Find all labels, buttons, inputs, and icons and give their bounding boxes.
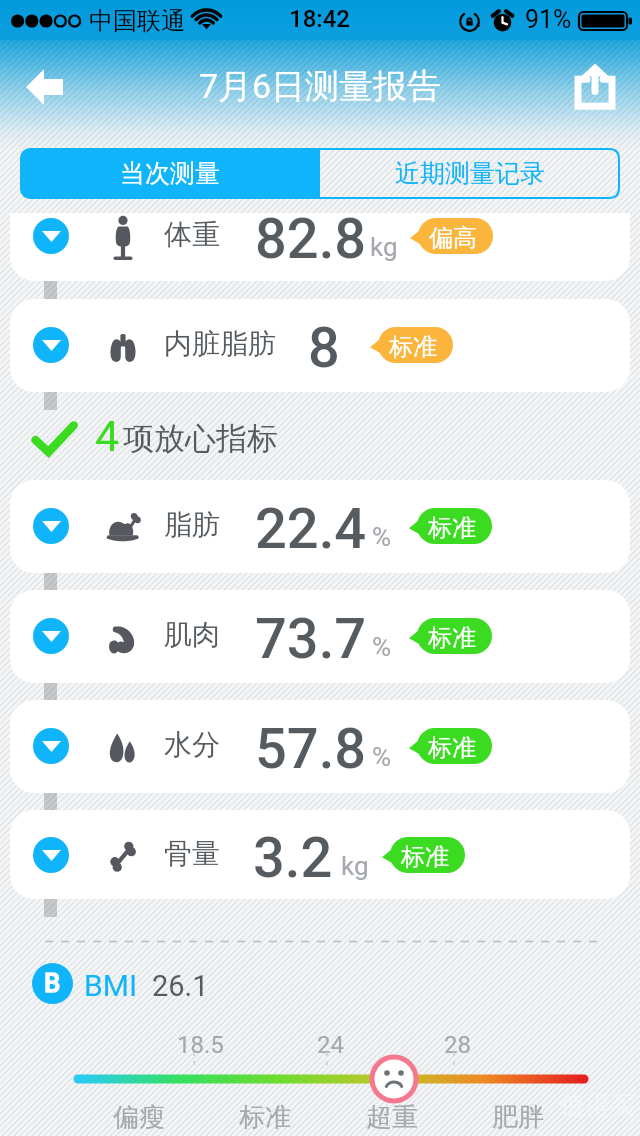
staticText: kg	[370, 232, 398, 262]
staticText: 标准	[401, 842, 449, 872]
staticText: 标准	[428, 513, 476, 543]
button[interactable]: 体重	[10, 213, 630, 281]
staticText: 8	[308, 315, 340, 381]
staticText: 28	[444, 1031, 471, 1059]
staticText: 标准	[428, 733, 476, 763]
staticText: 22.4	[255, 496, 367, 562]
staticText: %	[372, 632, 392, 662]
button[interactable]: 内脏脂肪	[10, 299, 630, 392]
staticText: 4	[95, 411, 120, 461]
staticText: B	[44, 968, 61, 998]
staticText: 57.8	[255, 716, 367, 782]
staticText: 值得买	[560, 1090, 635, 1121]
button[interactable]: 当次测量	[20, 148, 320, 199]
staticText: 中国联通	[89, 6, 185, 36]
button[interactable]: 近期测量记录	[320, 148, 620, 199]
staticText: %	[372, 522, 392, 552]
staticText: 标准	[389, 332, 437, 362]
staticText: 肌肉	[164, 617, 220, 652]
staticText: BMI	[84, 968, 138, 1003]
staticText: 3.2	[253, 825, 333, 891]
staticText: 内脏脂肪	[164, 326, 276, 361]
button[interactable]: Share	[570, 58, 620, 114]
staticText: 项放心指标	[123, 419, 278, 458]
button[interactable]: Back	[14, 58, 74, 116]
button[interactable]: 肌肉	[10, 590, 630, 683]
staticText: kg	[341, 851, 369, 881]
staticText: 骨量	[164, 836, 220, 871]
staticText: 体重	[164, 217, 220, 252]
staticText: 近期测量记录	[395, 158, 545, 189]
staticText: 当次测量	[120, 158, 220, 189]
staticText: 7月6日测量报告	[0, 65, 640, 108]
staticText: 82.8	[255, 213, 367, 272]
staticText: %	[372, 742, 392, 772]
button[interactable]: 脂肪	[10, 480, 630, 573]
staticText: 标准	[239, 1101, 291, 1134]
staticText: 18.5	[177, 1031, 224, 1059]
button[interactable]: 水分	[10, 700, 630, 793]
staticText: 超重	[366, 1101, 418, 1134]
button[interactable]: 骨量	[10, 810, 630, 899]
staticText: 偏瘦	[113, 1101, 165, 1134]
staticText: 24	[317, 1031, 344, 1059]
staticText: 水分	[164, 727, 220, 762]
staticText: 标准	[428, 623, 476, 653]
staticText: 18:42	[289, 5, 350, 33]
staticText: 脂肪	[164, 507, 220, 542]
staticText: 肥胖	[492, 1101, 544, 1134]
staticText: 偏高	[429, 223, 477, 253]
staticText: 26.1	[152, 969, 209, 1003]
staticText: 91%	[525, 5, 572, 34]
staticText: 73.7	[255, 606, 367, 672]
